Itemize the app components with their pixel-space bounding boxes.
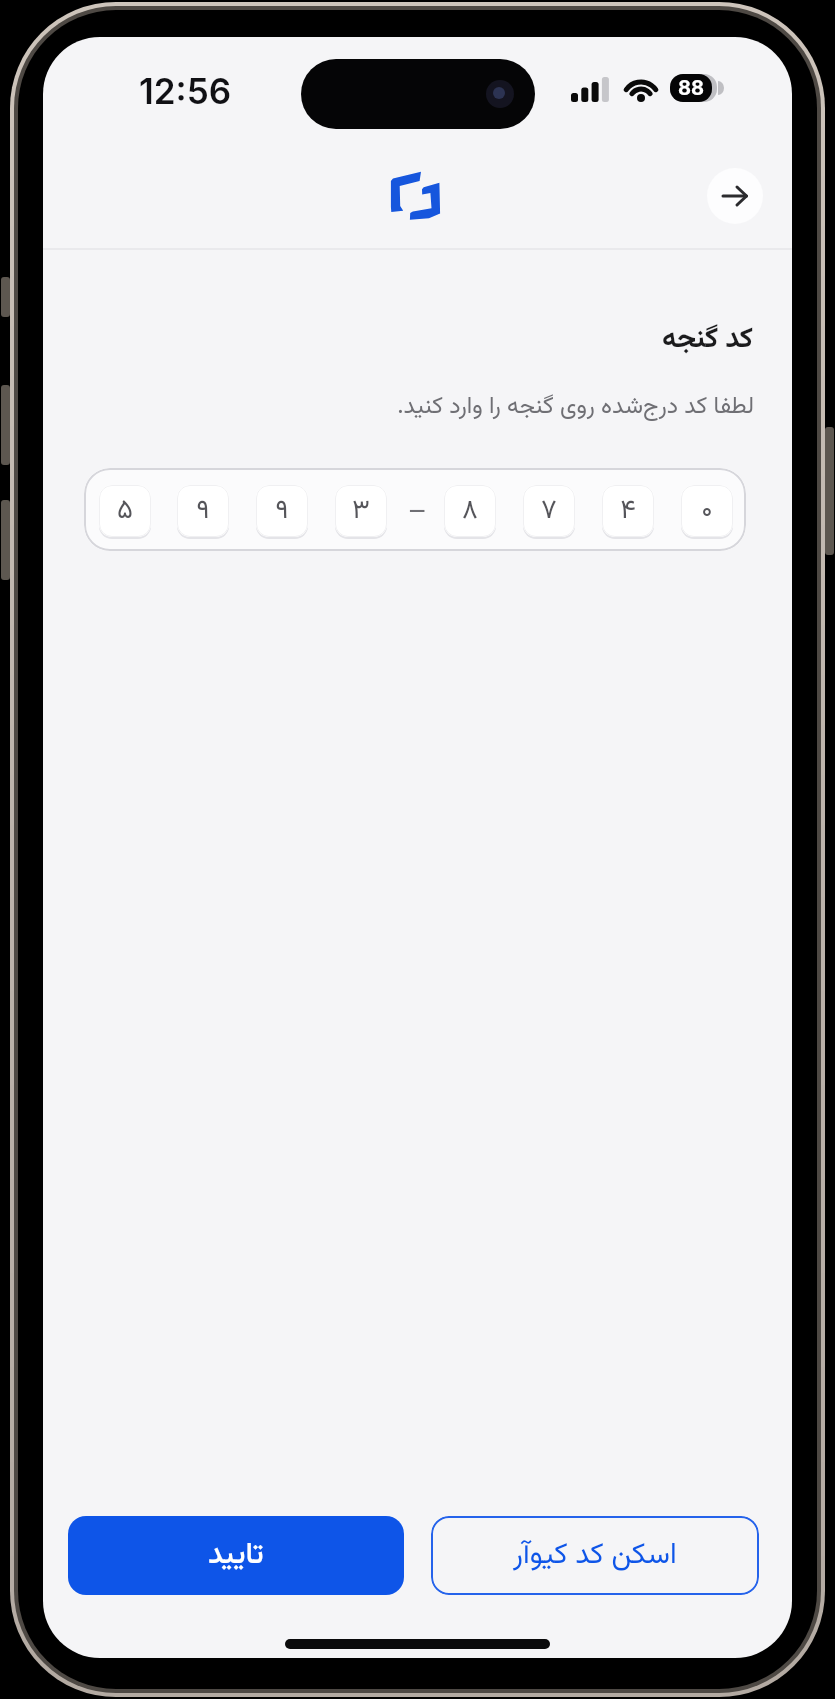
button[interactable]: تایید [68,1516,404,1595]
staticText: – [408,489,427,533]
button[interactable] [707,168,763,224]
staticText: تایید [208,1532,264,1579]
staticText: 12:56 [139,70,232,112]
button[interactable]: ۵ [84,468,746,551]
staticText: ۹ [196,490,210,532]
staticText: ۸ [462,490,478,532]
staticText: ۵ [117,490,133,532]
staticText: اسکن کد کیوآر [513,1533,677,1578]
staticText: ۰ [701,490,713,532]
staticText: ۹ [275,490,289,532]
staticText: ۴ [620,490,636,532]
button[interactable]: اسکن کد کیوآر [431,1516,759,1595]
staticText: لطفا کد درج‌شده روی گنجه را وارد کنید. [397,389,754,426]
staticText: 88 [678,76,705,100]
staticText: ۷ [541,490,557,532]
staticText: کد گنجه [662,318,754,362]
staticText: ۳ [352,490,370,532]
